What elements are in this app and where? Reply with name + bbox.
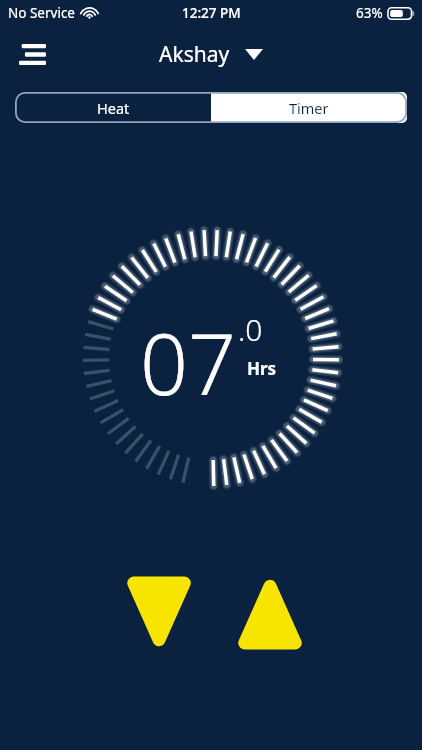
staticText: 07 bbox=[140, 305, 236, 419]
staticText: 12:27 PM bbox=[182, 4, 241, 22]
staticText: Hrs bbox=[247, 357, 277, 380]
staticText: 63% bbox=[356, 4, 383, 22]
staticText: Akshay bbox=[159, 40, 230, 69]
button[interactable]: Akshay bbox=[159, 40, 263, 69]
button[interactable]: Timer bbox=[211, 92, 407, 123]
button[interactable]: Heat bbox=[15, 92, 211, 123]
staticText: .0 bbox=[238, 309, 263, 350]
staticText: Timer bbox=[289, 98, 329, 118]
staticText: 07 bbox=[140, 305, 236, 419]
button[interactable]: Menu bbox=[8, 30, 56, 78]
staticText: No Service bbox=[8, 4, 75, 22]
staticText: Heat bbox=[97, 98, 130, 118]
button[interactable]: Increase bbox=[235, 576, 305, 650]
button[interactable]: Decrease bbox=[124, 576, 194, 650]
